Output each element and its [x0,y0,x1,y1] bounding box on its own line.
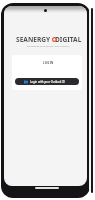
staticText: SEANERGY [16,35,51,44]
staticText: ENTERPRISE DIGITAL SOLUTIONS [27,44,70,47]
staticText: DIGITAL [55,35,82,44]
staticText: Login with your Outlook ID [30,80,65,84]
staticText: LOGIN [43,61,54,65]
button[interactable]: Login with your Outlook ID [15,78,79,85]
